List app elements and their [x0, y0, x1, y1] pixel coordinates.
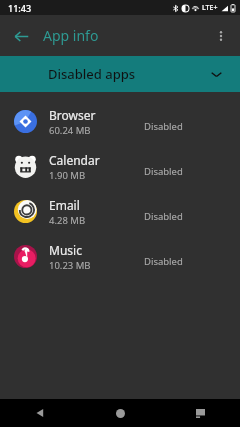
- staticText: 1.90 MB: [49, 169, 86, 182]
- staticText: Disabled: [144, 120, 183, 133]
- staticText: Music: [49, 242, 82, 258]
- button[interactable]: Email: [0, 189, 240, 234]
- button[interactable]: More options: [207, 22, 235, 50]
- button[interactable]: Back: [7, 22, 35, 50]
- button[interactable]: Recent apps: [160, 399, 240, 427]
- staticText: 4.28 MB: [49, 214, 86, 227]
- staticText: LTE+: [202, 3, 218, 13]
- button[interactable]: Disabled apps: [0, 56, 240, 92]
- button[interactable]: Calendar: [0, 144, 240, 189]
- button[interactable]: Back: [0, 399, 80, 427]
- staticText: 10.23 MB: [49, 259, 91, 272]
- staticText: Disabled: [144, 165, 183, 178]
- staticText: Disabled: [144, 210, 183, 223]
- staticText: Browser: [49, 107, 96, 123]
- staticText: Calendar: [49, 152, 100, 168]
- button[interactable]: Music: [0, 234, 240, 279]
- button[interactable]: Home: [80, 399, 160, 427]
- staticText: Disabled: [144, 255, 183, 268]
- staticText: 60.24 MB: [49, 124, 91, 137]
- staticText: App info: [43, 26, 99, 45]
- button[interactable]: Browser: [0, 99, 240, 144]
- staticText: 11:43: [8, 2, 32, 14]
- staticText: Disabled apps: [48, 65, 136, 83]
- staticText: Email: [49, 197, 80, 213]
